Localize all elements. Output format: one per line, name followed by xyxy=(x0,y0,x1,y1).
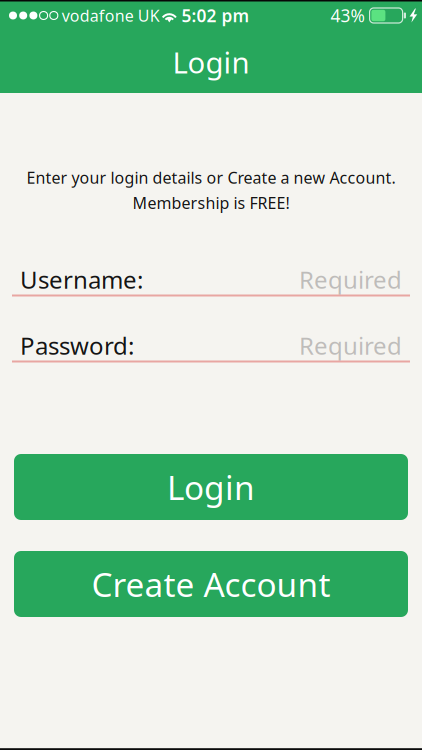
button[interactable]: Create Account xyxy=(14,551,408,617)
staticText: Login xyxy=(167,465,255,509)
staticText: Enter your login details or Create a new… xyxy=(26,167,395,188)
staticText: 43% xyxy=(331,4,365,27)
button[interactable]: Username: xyxy=(0,264,422,296)
staticText: 5:02 pm xyxy=(181,4,249,27)
button[interactable]: Login xyxy=(14,454,408,520)
button[interactable]: Password: xyxy=(0,330,422,362)
staticText: Username: xyxy=(20,264,143,295)
staticText: Required xyxy=(299,330,402,361)
staticText: Create Account xyxy=(91,562,330,606)
staticText: Required xyxy=(299,264,402,295)
staticText: Login xyxy=(172,42,249,81)
staticText: Password: xyxy=(20,330,134,361)
staticText: Membership is FREE! xyxy=(132,192,289,213)
staticText: vodafone UK xyxy=(62,5,160,26)
